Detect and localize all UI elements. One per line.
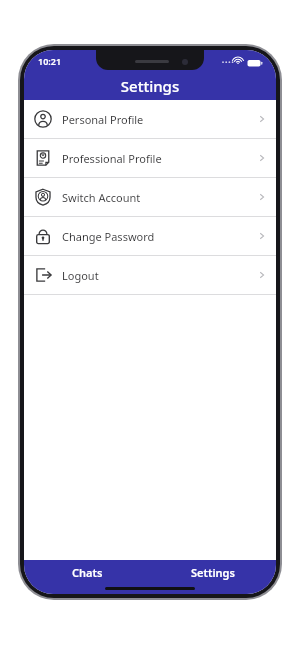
staticText: Switch Account — [62, 190, 141, 205]
staticText: Logout — [62, 268, 99, 283]
button[interactable]: Professional Profile — [24, 139, 276, 177]
staticText: Chats — [72, 565, 103, 580]
button[interactable]: Chats — [24, 560, 150, 594]
staticText: Change Password — [62, 229, 155, 244]
button[interactable]: Switch Account — [24, 178, 276, 216]
button[interactable]: Change Password — [24, 217, 276, 255]
staticText: Professional Profile — [62, 151, 162, 166]
staticText: Settings — [191, 565, 235, 580]
staticText: 10:21 — [38, 55, 62, 67]
staticText: Personal Profile — [62, 112, 144, 127]
button[interactable]: Personal Profile — [24, 100, 276, 138]
staticText: Settings — [24, 76, 276, 96]
button[interactable]: Logout — [24, 256, 276, 294]
button[interactable]: Settings — [150, 560, 276, 594]
